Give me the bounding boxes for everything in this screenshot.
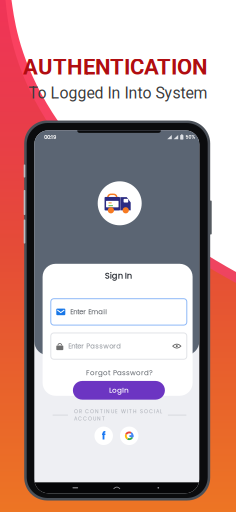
button[interactable]: Login [73, 381, 165, 400]
staticText: Login [109, 385, 129, 395]
staticText: f [102, 428, 106, 443]
staticText: 50% [185, 134, 195, 140]
button[interactable]: Continue with Facebook [94, 427, 113, 445]
staticText: OR CONTINUE WITH SOCIAL ACCOUNT [74, 408, 162, 422]
staticText: Enter Email [70, 307, 107, 317]
staticText: AUTHENTICATION [23, 54, 208, 80]
staticText: 00:19 [44, 133, 56, 141]
staticText: Sign In [105, 270, 132, 282]
staticText: Enter Password [68, 341, 121, 351]
staticText: Forgot Password? [86, 368, 153, 378]
button[interactable]: Enter Email [51, 299, 187, 325]
button[interactable]: Enter Password [51, 333, 187, 359]
button[interactable]: Forgot Password? [85, 367, 154, 379]
button[interactable]: Continue with Google [120, 427, 138, 445]
staticText: To Logged In Into System [29, 84, 208, 102]
